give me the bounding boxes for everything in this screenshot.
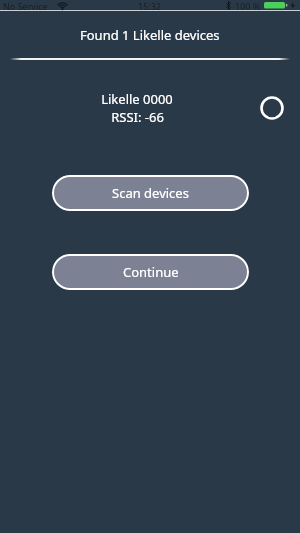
staticText: Found 1 Likelle devices	[80, 26, 220, 44]
staticText: 100 %	[235, 0, 261, 12]
staticText: 15:32	[138, 0, 162, 12]
staticText: No Service	[3, 0, 48, 12]
staticText: Continue	[123, 263, 179, 281]
button[interactable]: Likelle 0000	[0, 90, 300, 126]
staticText: RSSI: -66	[111, 108, 164, 126]
button[interactable]: Scan devices	[52, 175, 249, 211]
button[interactable]: Continue	[52, 254, 249, 290]
staticText: Likelle 0000	[101, 90, 173, 108]
staticText: Scan devices	[112, 184, 189, 202]
